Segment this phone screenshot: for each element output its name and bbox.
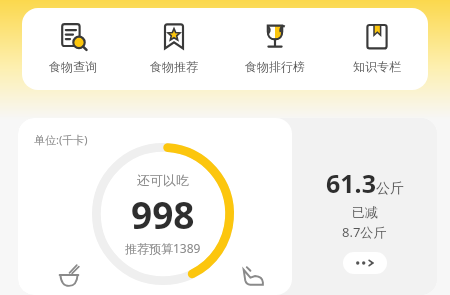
staticText: 公斤 [376, 180, 404, 198]
staticText: 8.7公斤 [342, 223, 387, 241]
button[interactable]: 61.3 [292, 118, 437, 295]
staticText: 食物查询 [49, 59, 97, 74]
staticText: 还可以吃 [137, 172, 189, 188]
staticText: 998 [131, 189, 195, 239]
button[interactable]: 更多 [343, 252, 387, 274]
staticText: 61.3 [326, 166, 376, 200]
staticText: 已减 [352, 204, 378, 220]
staticText: 食物排行榜 [245, 59, 305, 74]
button[interactable]: 记录饮食 [52, 259, 86, 293]
staticText: 知识专栏 [353, 59, 401, 74]
button[interactable]: 食物查询 [22, 8, 123, 90]
button[interactable]: 食物推荐 [123, 8, 224, 90]
staticText: 食物推荐 [150, 59, 198, 74]
button[interactable]: 知识专栏 [326, 8, 428, 90]
button[interactable]: 食物排行榜 [224, 8, 326, 90]
staticText: 单位:(千卡) [34, 132, 88, 147]
staticText: 推荐预算1389 [125, 240, 201, 256]
button[interactable]: 记录运动 [236, 259, 270, 293]
